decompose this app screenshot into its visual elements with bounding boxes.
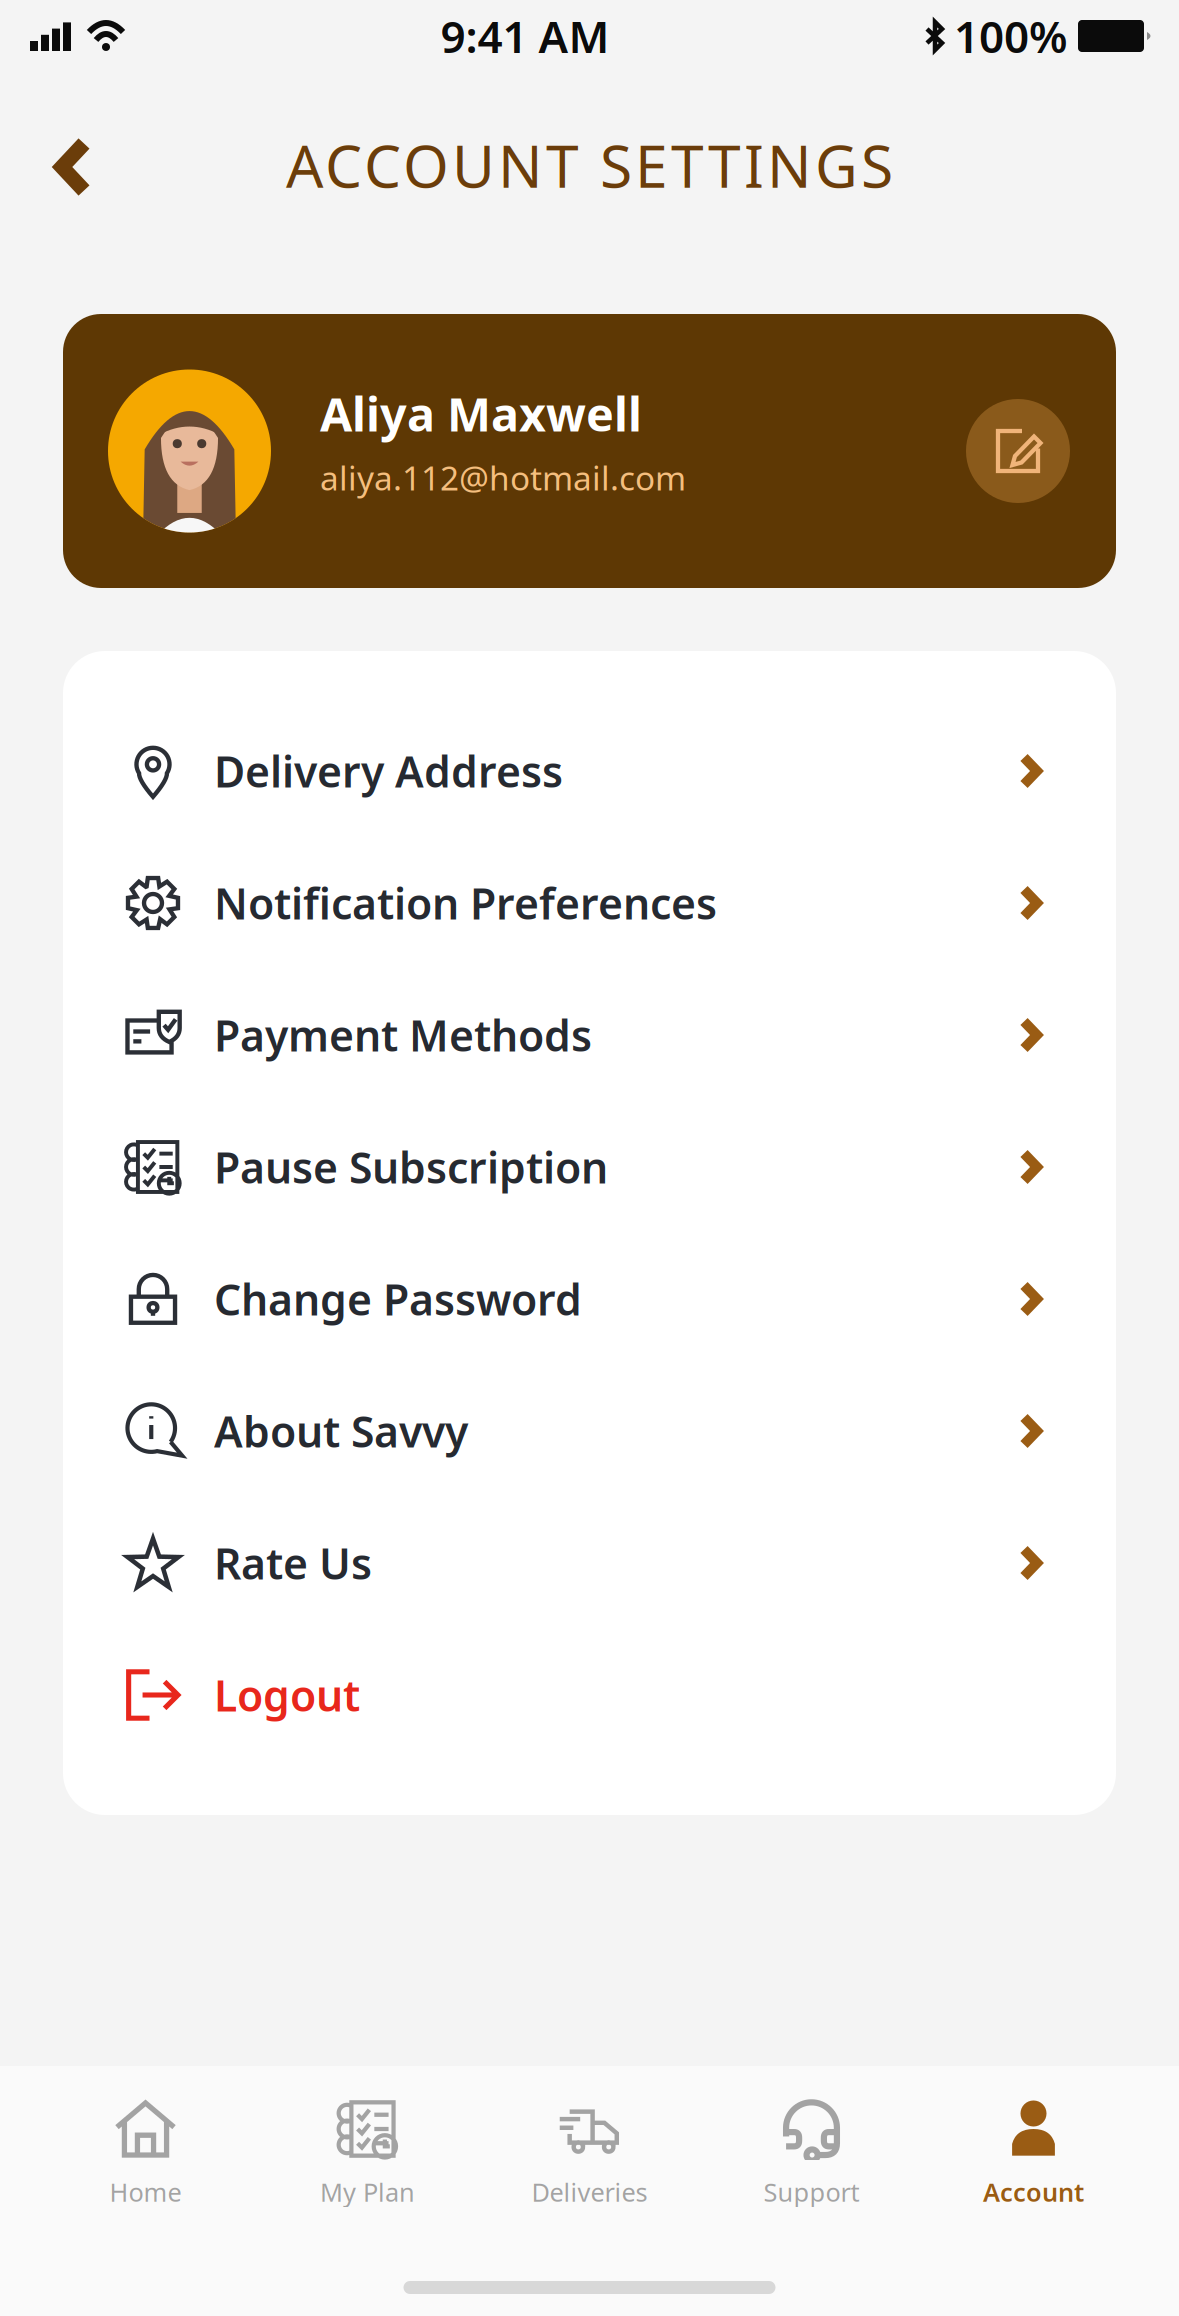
staticText: My Plan bbox=[320, 2175, 415, 2209]
button[interactable]: Deliveries bbox=[478, 2098, 700, 2207]
staticText: Delivery Address bbox=[214, 743, 563, 799]
staticText: Account bbox=[983, 2175, 1084, 2209]
button[interactable]: Pause Subscription bbox=[63, 1101, 1116, 1233]
button[interactable]: Payment Methods bbox=[63, 969, 1116, 1101]
button[interactable]: About Savvy bbox=[63, 1365, 1116, 1497]
staticText: Home bbox=[109, 2175, 181, 2209]
staticText: About Savvy bbox=[214, 1403, 468, 1459]
button[interactable]: Change Password bbox=[63, 1233, 1116, 1365]
button[interactable]: Account bbox=[922, 2098, 1144, 2207]
button[interactable]: Back bbox=[18, 112, 128, 222]
button[interactable]: Notification Preferences bbox=[63, 837, 1116, 969]
button[interactable]: Logout bbox=[63, 1629, 1116, 1761]
staticText: Support bbox=[763, 2175, 859, 2209]
staticText: Aliya Maxwell bbox=[320, 382, 642, 444]
staticText: Notification Preferences bbox=[214, 875, 717, 931]
staticText: Rate Us bbox=[214, 1535, 372, 1591]
button[interactable]: My Plan bbox=[256, 2098, 478, 2207]
button[interactable]: Rate Us bbox=[63, 1497, 1116, 1629]
staticText: 9:41 AM bbox=[440, 7, 609, 65]
staticText: 100% bbox=[954, 7, 1068, 65]
staticText: Change Password bbox=[214, 1271, 582, 1327]
staticText: aliya.112@hotmail.com bbox=[320, 455, 686, 500]
staticText: Deliveries bbox=[531, 2175, 647, 2209]
button[interactable]: Delivery Address bbox=[63, 705, 1116, 837]
button[interactable]: Home bbox=[34, 2098, 256, 2207]
staticText: ACCOUNT SETTINGS bbox=[286, 126, 893, 204]
staticText: Logout bbox=[214, 1667, 360, 1723]
staticText: Pause Subscription bbox=[214, 1139, 608, 1195]
staticText: Payment Methods bbox=[214, 1007, 592, 1063]
button[interactable]: Support bbox=[700, 2098, 922, 2207]
button[interactable]: Aliya Maxwell bbox=[63, 314, 1116, 588]
